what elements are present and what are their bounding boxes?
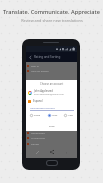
- staticText: Review and share new translations: [21, 18, 83, 23]
- button[interactable]: Hola mi amigo!: [26, 68, 77, 73]
- button[interactable]: Goedendag: [26, 130, 77, 135]
- button[interactable]: New: [63, 114, 74, 117]
- button[interactable]: Danke!: [26, 141, 77, 146]
- staticText: Translate. Communicate. Appreciate: [3, 8, 100, 16]
- button[interactable]: Back: [28, 55, 33, 60]
- staticText: New: [68, 114, 73, 117]
- button[interactable]: Edit: [34, 149, 40, 155]
- button[interactable]: Hi everyone: [26, 135, 77, 140]
- button[interactable]: Share: [49, 149, 55, 155]
- staticText: john.appleseed@gmail.com: [34, 93, 64, 96]
- staticText: John Appleseed: [34, 89, 53, 93]
- staticText: Sign in: [31, 64, 39, 67]
- staticText: Add another account: [30, 106, 55, 109]
- staticText: Danke!: [31, 142, 40, 145]
- staticText: Rating and Sorting: [34, 55, 61, 59]
- button[interactable]: John Appleseed: [26, 88, 77, 97]
- staticText: Mine: [52, 114, 58, 117]
- button[interactable]: Espanol: [26, 98, 77, 104]
- button[interactable]: Sign in: [26, 63, 77, 68]
- button[interactable]: Rated: [29, 114, 42, 117]
- staticText: Rated: [34, 114, 41, 117]
- staticText: Hola mi amigo!: [31, 69, 49, 72]
- button[interactable]: SAVE: [47, 123, 57, 128]
- staticText: Hi everyone: [31, 136, 45, 139]
- staticText: Choose an account: [40, 82, 64, 86]
- staticText: SAVE: [49, 124, 55, 127]
- staticText: Espanol: [33, 99, 43, 103]
- staticText: Goedendag: [31, 131, 45, 134]
- button[interactable]: Mine: [47, 114, 59, 117]
